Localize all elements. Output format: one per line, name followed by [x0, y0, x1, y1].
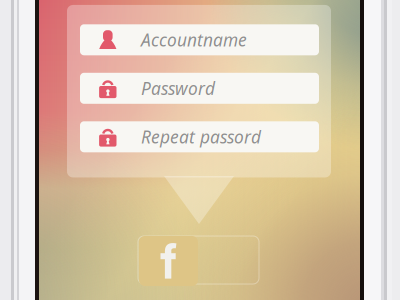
staticText: Repeat passord: [141, 125, 261, 148]
staticText: Accountname: [141, 28, 247, 51]
button[interactable]: Repeat passord: [80, 121, 319, 152]
button[interactable]: Password: [80, 73, 319, 104]
button[interactable]: Accountname: [80, 24, 319, 55]
button[interactable]: Sign in with Facebook: [139, 236, 198, 286]
staticText: Password: [141, 77, 215, 100]
